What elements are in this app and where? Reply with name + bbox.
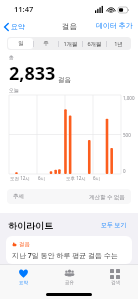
- staticText: 공유: [65, 280, 74, 286]
- button[interactable]: 요약: [0, 265, 46, 289]
- staticText: 걸음: [19, 241, 30, 248]
- button[interactable]: 검색: [92, 265, 138, 289]
- staticText: 6개월: [87, 40, 102, 48]
- staticText: 지난 7일 동안 하루 평균 걸음 수는: [12, 251, 118, 259]
- staticText: 총: [9, 54, 14, 60]
- staticText: 6시: [38, 175, 46, 181]
- staticText: 1개월: [63, 40, 78, 48]
- staticText: 500: [123, 132, 131, 138]
- staticText: 검색: [111, 280, 120, 286]
- staticText: 오전 12시: [10, 175, 30, 181]
- staticText: 오늘: [9, 87, 19, 93]
- staticText: 1년: [114, 40, 123, 48]
- staticText: 일: [18, 40, 24, 47]
- button[interactable]: 1개월: [58, 38, 82, 49]
- staticText: 주: [43, 40, 49, 47]
- button[interactable]: 걸음: [6, 236, 132, 264]
- button[interactable]: 주: [33, 38, 58, 49]
- button[interactable]: 공유: [46, 265, 92, 289]
- staticText: 2,833: [9, 61, 56, 86]
- staticText: 걸음: [62, 22, 77, 31]
- button[interactable]: 추세: [7, 189, 131, 204]
- staticText: 하이라이트: [8, 220, 53, 231]
- button[interactable]: 1년: [106, 38, 130, 49]
- staticText: 오후 12시: [66, 175, 86, 181]
- staticText: 11:47: [14, 4, 34, 14]
- staticText: 1,000: [123, 95, 135, 101]
- button[interactable]: 6개월: [82, 38, 106, 49]
- button[interactable]: 모두 보기: [98, 218, 130, 232]
- button[interactable]: 데이터 추가: [91, 19, 138, 33]
- button[interactable]: 요약: [0, 20, 29, 33]
- staticText: 추세: [13, 193, 24, 200]
- staticText: 6시: [93, 175, 101, 181]
- staticText: 걸음: [58, 76, 71, 84]
- button[interactable]: 일: [8, 38, 33, 49]
- staticText: 요약: [11, 22, 25, 31]
- staticText: 0: [123, 168, 126, 174]
- staticText: 계산할 수 없음: [89, 193, 125, 201]
- staticText: 요약: [19, 280, 28, 286]
